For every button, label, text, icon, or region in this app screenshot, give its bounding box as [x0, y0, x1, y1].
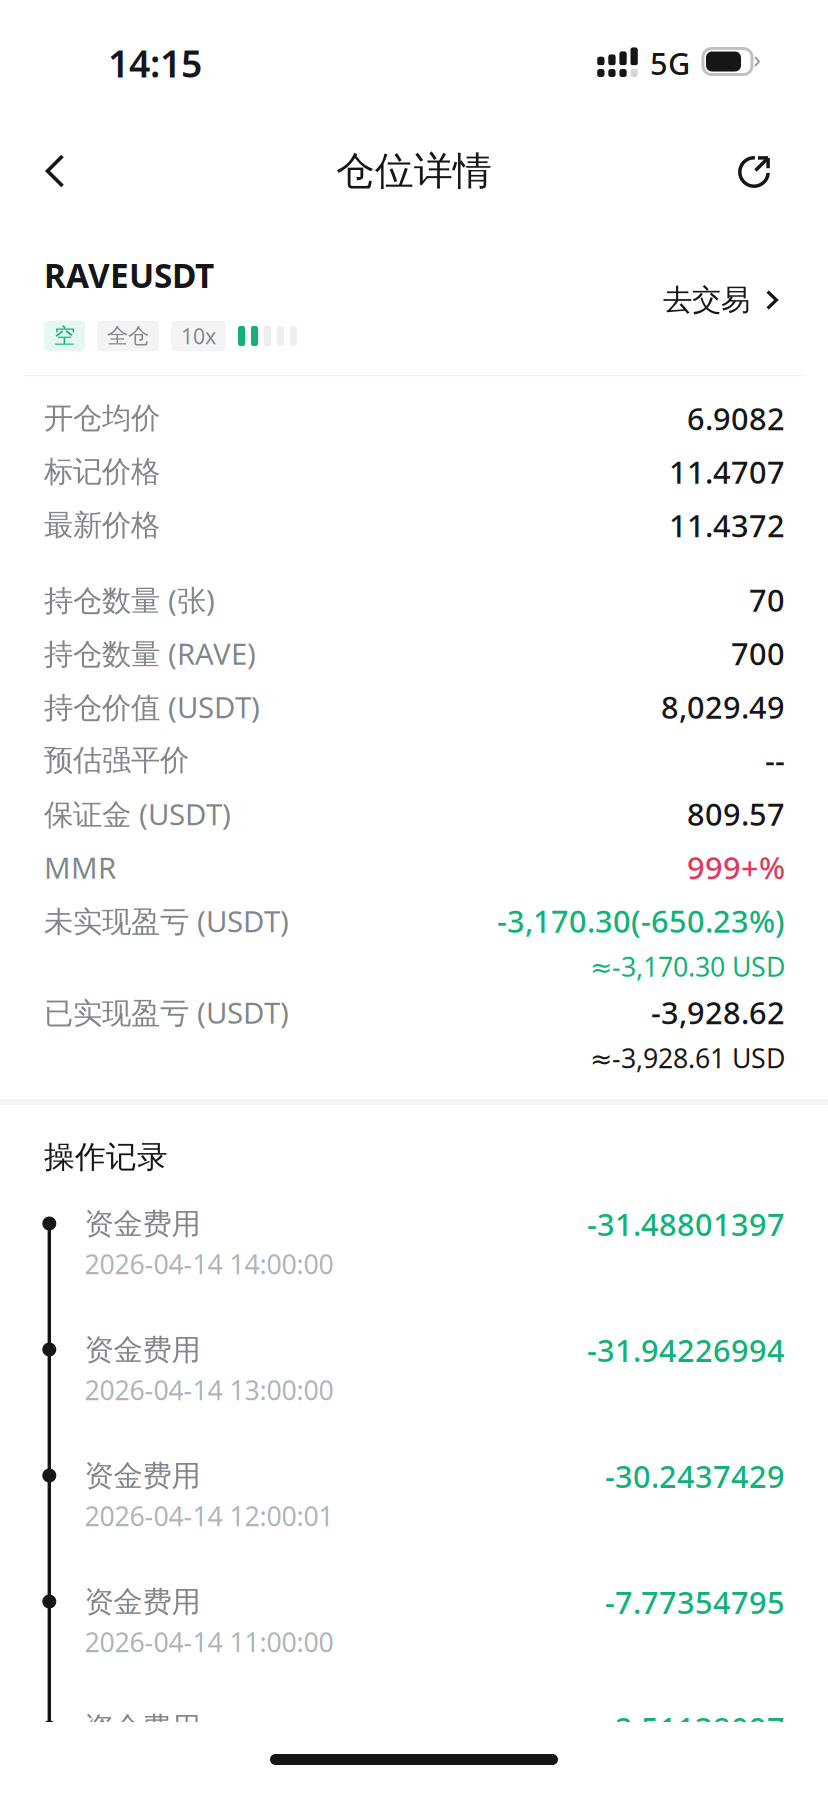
staticText: 开仓均价	[44, 400, 160, 436]
staticText: 11.4372	[669, 505, 785, 546]
staticText: 全仓	[107, 323, 149, 349]
button[interactable]: 返回	[13, 129, 97, 213]
staticText: 操作记录	[44, 1138, 168, 1176]
staticText: 6.9082	[687, 398, 785, 439]
staticText: 11.4707	[669, 451, 785, 492]
staticText: 空	[54, 323, 75, 349]
staticText: 已实现盈亏 (USDT)	[44, 993, 289, 1032]
staticText: 最新价格	[44, 507, 160, 543]
staticText: -7.77354795	[605, 1582, 785, 1622]
staticText: 标记价格	[44, 454, 160, 490]
staticText: 持仓价值 (USDT)	[44, 687, 260, 726]
staticText: 资金费用	[84, 1458, 200, 1494]
staticText: 资金费用	[84, 1206, 200, 1242]
staticText: 持仓数量 (张)	[44, 580, 215, 619]
button[interactable]: 分享	[713, 129, 797, 213]
staticText: -2.51138097	[605, 1708, 785, 1748]
staticText: -3,928.62	[651, 992, 785, 1033]
staticText: ≈-3,170.30 USD	[590, 949, 785, 984]
staticText: 70	[749, 579, 785, 620]
button[interactable]: 去交易	[663, 274, 778, 326]
staticText: 保证金 (USDT)	[44, 794, 231, 833]
staticText: 资金费用	[84, 1332, 200, 1368]
staticText: 2026-04-14 12:00:01	[84, 1498, 333, 1534]
staticText: 2026-04-14 10:00:00	[84, 1750, 333, 1786]
staticText: 700	[731, 633, 785, 674]
staticText: 资金费用	[84, 1584, 200, 1620]
staticText: 5G	[650, 43, 690, 83]
staticText: 资金费用	[84, 1710, 200, 1746]
staticText: MMR	[44, 848, 116, 887]
staticText: 预估强平价	[44, 742, 189, 778]
staticText: --	[765, 740, 785, 781]
staticText: 999+%	[687, 847, 785, 888]
staticText: 809.57	[687, 793, 785, 834]
staticText: 持仓数量 (RAVE)	[44, 634, 256, 673]
staticText: 去交易	[663, 282, 750, 318]
staticText: 2026-04-14 13:00:00	[84, 1372, 333, 1408]
staticText: -30.2437429	[605, 1456, 785, 1496]
staticText: ≈-3,928.61 USD	[590, 1040, 785, 1076]
staticText: -31.48801397	[587, 1204, 785, 1244]
staticText: -3,170.30(-650.23%)	[497, 900, 785, 941]
staticText: -31.94226994	[587, 1330, 785, 1370]
staticText: RAVEUSDT	[44, 253, 214, 297]
staticText: 未实现盈亏 (USDT)	[44, 901, 289, 940]
staticText: 10x	[181, 322, 216, 350]
staticText: 2026-04-14 11:00:00	[84, 1624, 333, 1660]
staticText: 14:15	[108, 38, 202, 88]
staticText: 8,029.49	[661, 686, 785, 727]
staticText: 仓位详情	[336, 147, 492, 195]
staticText: 2026-04-14 14:00:00	[84, 1246, 333, 1282]
